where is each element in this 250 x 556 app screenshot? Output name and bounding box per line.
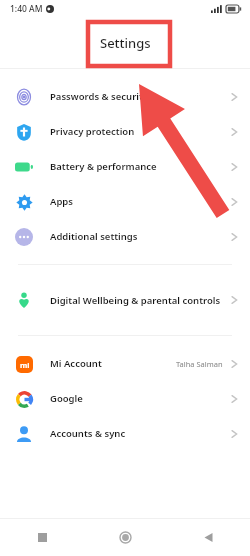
staticText: Privacy protection [50,125,135,138]
staticText: Google [50,392,83,405]
button[interactable]: Additional settings [0,219,250,254]
button[interactable]: Battery & performance [0,149,250,184]
button[interactable]: Back [167,519,250,556]
button[interactable]: Home [84,519,167,556]
staticText: Battery & performance [50,160,157,173]
staticText: Additional settings [50,230,138,243]
staticText: Digital Wellbeing & parental controls [50,294,221,307]
staticText: Passwords & security [50,90,149,103]
staticText: Apps [50,195,73,208]
staticText: Accounts & sync [50,427,126,440]
button[interactable]: Recent apps [0,519,84,556]
staticText: 1:40 AM [10,3,43,15]
staticText: Talha Salman [176,359,223,369]
button[interactable]: Apps [0,184,250,219]
button[interactable]: Passwords & security [0,79,250,114]
staticText: Settings [100,34,151,52]
staticText: Mi Account [50,357,102,370]
button[interactable]: mi [0,346,250,381]
button[interactable]: Accounts & sync [0,416,250,451]
staticText: mi [20,360,30,370]
button[interactable]: Privacy protection [0,114,250,149]
button[interactable]: Digital Wellbeing & parental controls [0,277,250,323]
button[interactable]: Google [0,381,250,416]
